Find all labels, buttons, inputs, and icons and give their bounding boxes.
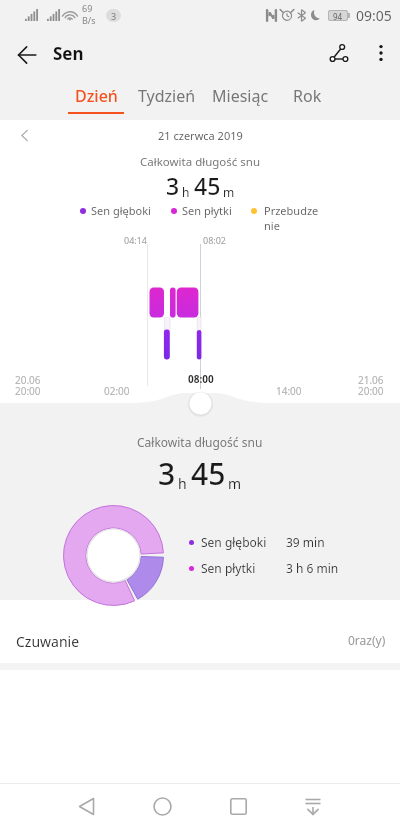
staticText: Całkowita długość snu [140,154,261,170]
button[interactable]: Tydzień [136,80,198,120]
staticText: 08:02 [203,234,227,246]
staticText: 39 min [286,534,325,550]
button[interactable]: Drag handle [189,392,212,415]
staticText: 21.06 20:00 [358,373,384,398]
staticText: 3 [166,170,180,201]
staticText: Całkowita długość snu [137,434,263,450]
staticText: 08:00 [188,372,214,386]
staticText: 45 [194,170,221,201]
staticText: Sen [53,42,84,65]
staticText: 14:00 [276,384,302,398]
staticText: 3 [111,10,117,22]
staticText: Sen płytki [182,203,232,218]
staticText: 09:05 [356,6,392,25]
staticText: 94 [333,11,343,20]
staticText: h [182,184,190,200]
staticText: Czuwanie [16,632,80,651]
button[interactable]: Back [64,784,108,828]
staticText: 0raz(y) [348,632,386,648]
staticText: Przebudze nie [264,203,319,233]
staticText: 69 [82,2,93,14]
button[interactable]: Czuwanie [0,600,400,663]
button[interactable]: Miesiąc [210,80,270,120]
button[interactable]: Rok [288,80,326,120]
staticText: Miesiąc [212,85,269,107]
button[interactable]: Share [321,35,357,71]
staticText: 45 [191,453,226,494]
staticText: 3 [158,453,176,494]
staticText: 21 czerwca 2019 [158,128,243,143]
button[interactable]: Hide navigation bar [291,784,335,828]
staticText: Sen głęboki [91,203,151,218]
button[interactable]: Recents [216,784,260,828]
button[interactable]: Back [9,37,45,73]
staticText: Dzień [75,85,118,107]
staticText: m [228,474,242,493]
staticText: 20.06 20:00 [15,373,41,398]
staticText: 3 h 6 min [286,560,339,576]
staticText: 02:00 [104,384,130,398]
staticText: 04:14 [124,234,148,246]
staticText: Rok [293,85,322,107]
staticText: m [223,184,235,200]
staticText: h [178,474,187,493]
staticText: Tydzień [138,85,196,107]
button[interactable]: Dzień [68,80,124,120]
button[interactable]: Previous day [8,125,40,145]
button[interactable]: More options [363,35,399,71]
staticText: B/s [82,14,96,26]
button[interactable]: Home [140,784,184,828]
staticText: Sen głęboki [201,534,286,550]
staticText: Sen płytki [201,560,286,576]
